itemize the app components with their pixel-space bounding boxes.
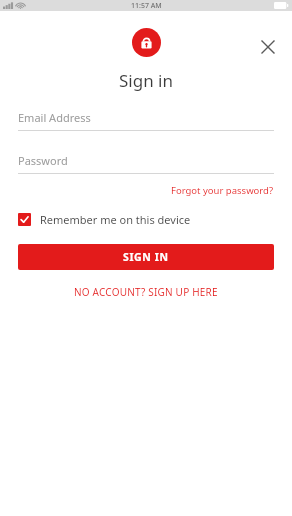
button[interactable]: Password [18,153,274,174]
staticText: Forgot your password? [171,184,274,197]
staticText: NO ACCOUNT? SIGN UP HERE [74,285,218,299]
staticText: SIGN IN [123,250,169,264]
button[interactable]: Close [254,33,282,61]
button[interactable]: NO ACCOUNT? SIGN UP HERE [68,282,224,302]
staticText: Sign in [0,69,292,92]
button[interactable]: Email Address [18,110,274,131]
button[interactable]: Forgot your password? [171,182,274,199]
staticText: Remember me on this device [40,212,191,227]
staticText: 11:57 AM [131,1,162,11]
staticText: Password [18,153,68,168]
button[interactable]: SIGN IN [18,244,274,270]
button[interactable]: Remember me on this device [17,209,192,230]
staticText: Email Address [18,110,91,125]
